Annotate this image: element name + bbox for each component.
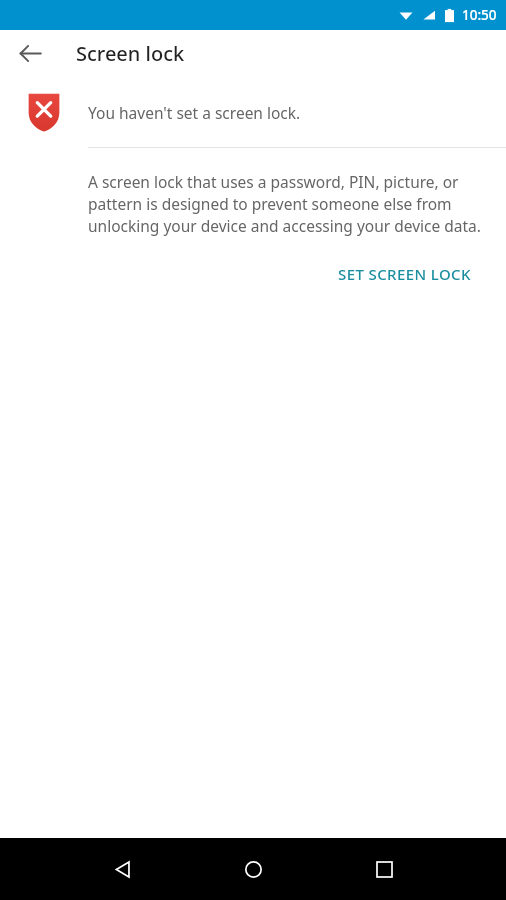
staticText: 10:50 bbox=[462, 6, 497, 24]
button[interactable]: Back bbox=[11, 34, 49, 72]
button[interactable]: Back bbox=[98, 845, 146, 893]
button[interactable]: Home bbox=[229, 845, 277, 893]
staticText: Screen lock bbox=[76, 40, 185, 67]
button[interactable]: Recent apps bbox=[360, 845, 408, 893]
staticText: You haven't set a screen lock. bbox=[88, 102, 301, 123]
button[interactable]: SET SCREEN LOCK bbox=[334, 258, 475, 290]
staticText: SET SCREEN LOCK bbox=[338, 264, 471, 284]
staticText: A screen lock that uses a password, PIN,… bbox=[88, 171, 490, 236]
